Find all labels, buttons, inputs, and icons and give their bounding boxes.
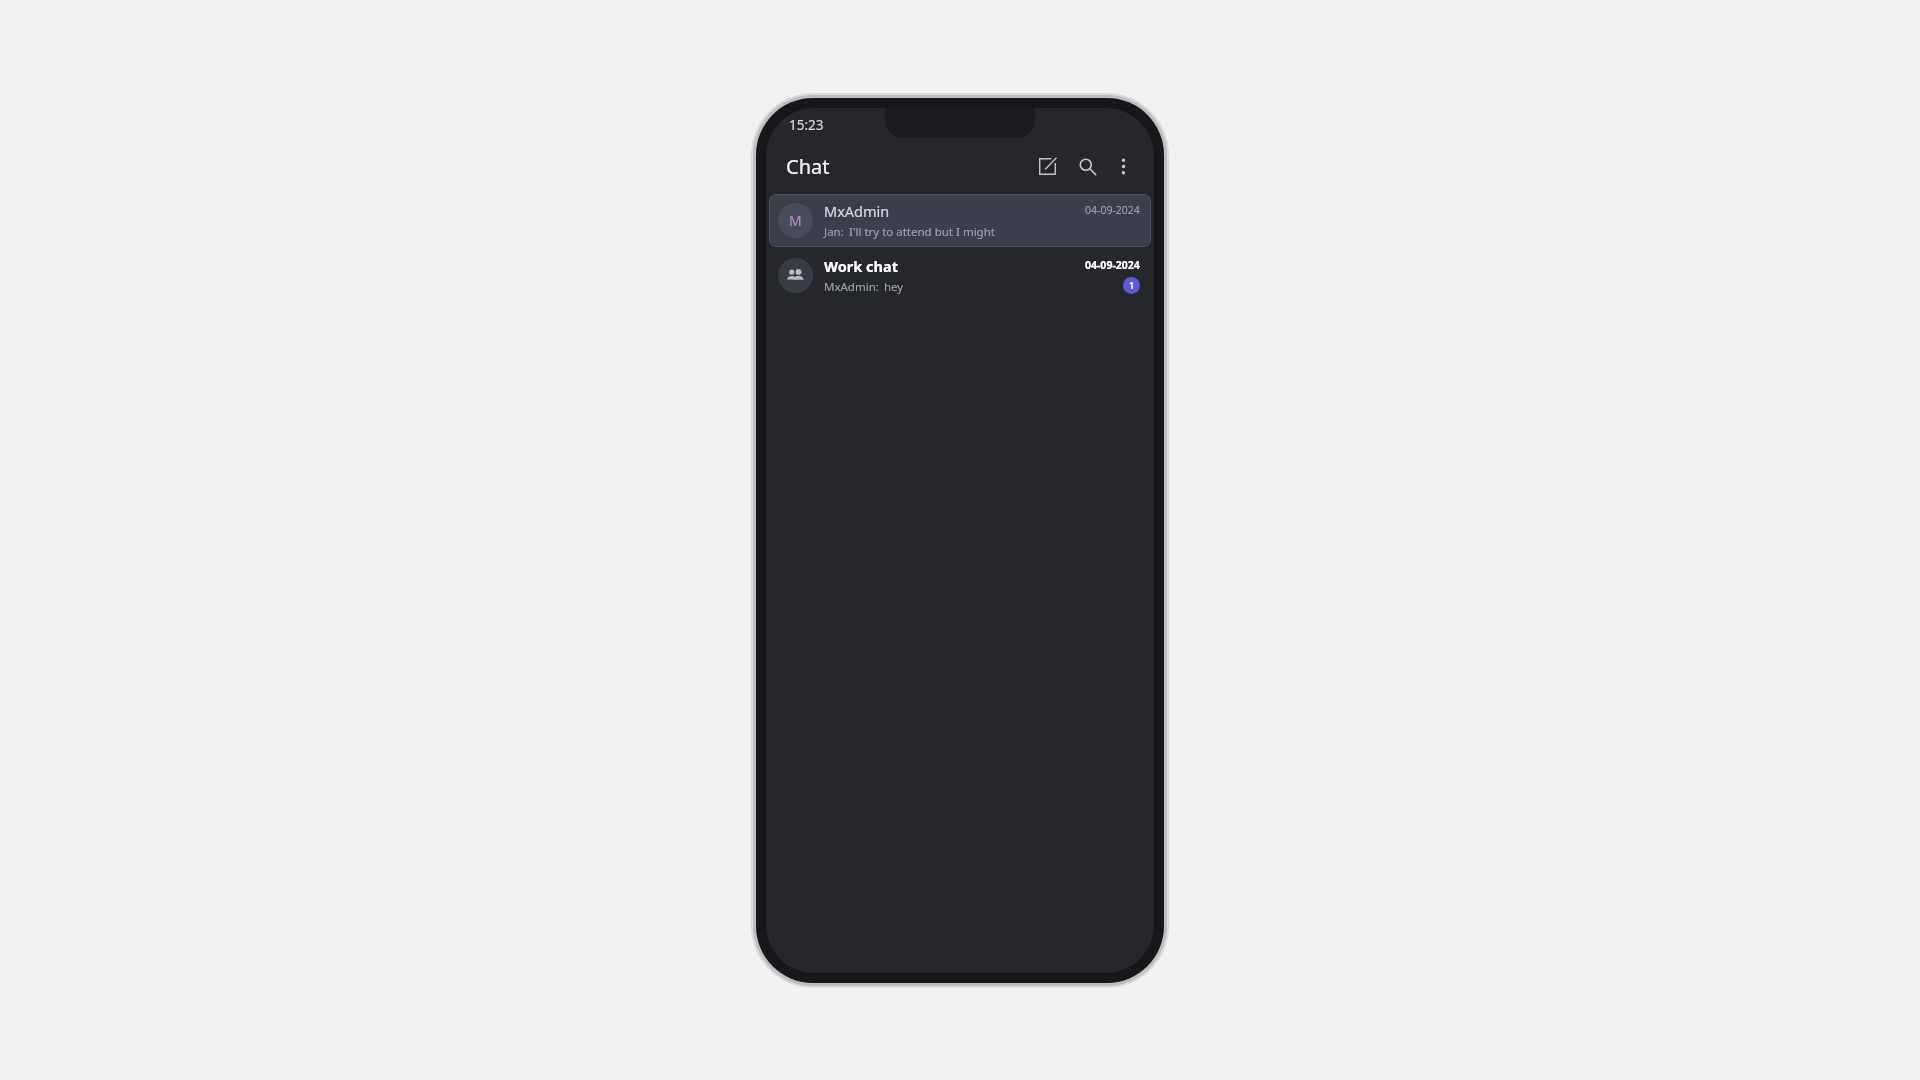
button[interactable]: Compose new message [1030,149,1064,183]
staticText: Work chat [824,256,898,276]
staticText: MxAdmin: [824,279,879,295]
button[interactable]: Work chat [769,249,1151,302]
button[interactable]: More options [1106,149,1140,183]
staticText: hey [884,279,904,295]
staticText: 04-09-2024 [1085,258,1140,272]
staticText: 1 [1129,279,1135,292]
button[interactable]: M [769,194,1151,247]
staticText: 15:23 [789,116,824,134]
button[interactable]: Search [1070,149,1104,183]
staticText: I'll try to attend but I might [849,224,995,240]
staticText: Jan: [824,224,844,240]
staticText: MxAdmin [824,201,890,221]
staticText: Chat [786,153,830,180]
staticText: 04-09-2024 [1085,203,1140,217]
staticText: M [789,211,802,230]
